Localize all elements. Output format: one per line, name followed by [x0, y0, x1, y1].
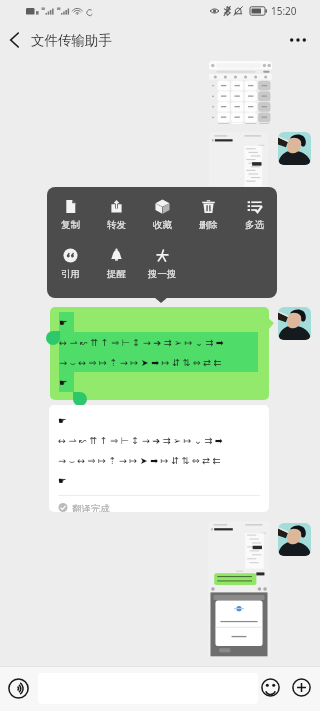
button[interactable]: Voice input: [8, 678, 29, 699]
button[interactable]: 删除: [185, 199, 231, 231]
button[interactable]: Avatar: [278, 307, 311, 340]
staticText: ☛: [59, 317, 68, 328]
staticText: ☛: [59, 377, 68, 388]
staticText: 提醒: [107, 268, 126, 280]
staticText: 搜一搜: [148, 268, 177, 280]
staticText: 转发: [107, 219, 126, 231]
button[interactable]: 复制: [47, 199, 93, 231]
button[interactable]: ☛: [49, 405, 269, 512]
staticText: 翻译完成: [72, 503, 110, 512]
staticText: 复制: [61, 219, 80, 231]
staticText: 15:20: [271, 4, 297, 18]
button[interactable]: 引用: [47, 248, 93, 280]
staticText: 引用: [61, 268, 80, 280]
staticText: → ⌣ ↔ ⇒ ↦ ⇡ → ↦ ➤ ➡ ↦ ⇵ ⇅ ⇔ ⇄ ⇇: [58, 454, 221, 467]
staticText: ☛: [58, 475, 67, 486]
staticText: 文件传输助手: [31, 32, 112, 49]
button[interactable]: 收藏: [139, 199, 185, 231]
button[interactable]: Avatar: [278, 523, 311, 556]
button[interactable]: 转发: [93, 199, 139, 231]
staticText: ↔ ⇀ ↜ ⇈ ↑ ⇒ ⊢ ↕ → ➔ ⇉ ➢ ↦ ⌄ ⇉ ➡: [58, 434, 223, 447]
button[interactable]: Back: [0, 22, 30, 58]
button[interactable]: 多选: [231, 199, 277, 231]
button[interactable]: [208, 521, 270, 657]
staticText: 多选: [245, 219, 264, 231]
button[interactable]: [209, 61, 272, 124]
staticText: → ⌣ ↔ ⇒ ↦ ⇡ → ↦ ➤ ➡ ↦ ⇵ ⇅ ⇔ ⇄ ⇇: [59, 356, 222, 369]
staticText: ☛: [58, 415, 67, 426]
staticText: 收藏: [153, 219, 172, 231]
button[interactable]: ☛: [50, 307, 269, 400]
button[interactable]: 搜一搜: [139, 248, 185, 280]
staticText: 删除: [199, 219, 218, 231]
button[interactable]: More: [292, 678, 311, 697]
button[interactable]: Avatar: [278, 132, 311, 165]
staticText: ↔ ⇀ ↜ ⇈ ↑ ⇒ ⊢ ↕ → ➔ ⇉ ➢ ↦ ⌄ ⇉ ➡: [59, 336, 224, 349]
button[interactable]: More options: [283, 22, 313, 58]
button[interactable]: [209, 132, 268, 190]
button[interactable]: 提醒: [93, 248, 139, 280]
button[interactable]: Emoji: [261, 678, 280, 697]
